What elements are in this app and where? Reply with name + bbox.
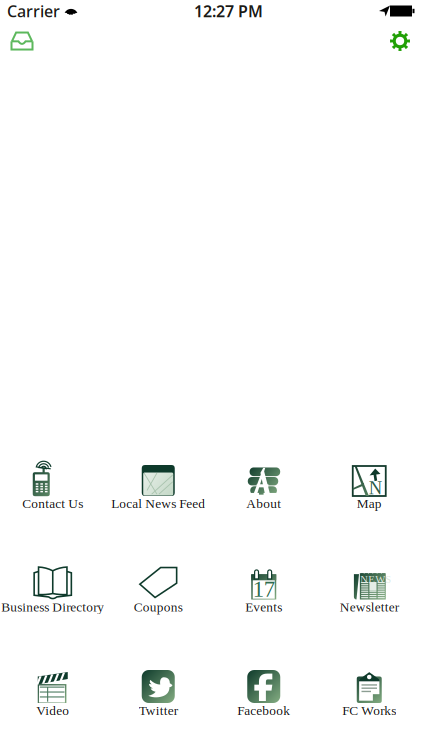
staticText: FC Works xyxy=(342,703,396,718)
staticText: Contact Us xyxy=(22,496,83,511)
staticText: Business Directory xyxy=(1,599,104,614)
staticText: 17 xyxy=(253,576,275,601)
staticText: Carrier xyxy=(7,0,60,22)
staticText: Facebook xyxy=(237,703,290,718)
button[interactable]: Business Directory xyxy=(0,565,105,615)
button[interactable]: N xyxy=(316,462,422,512)
button[interactable]: About xyxy=(211,462,316,512)
button[interactable]: Facebook xyxy=(211,669,316,719)
button[interactable]: Inbox xyxy=(0,23,44,59)
staticText: Events xyxy=(245,599,282,614)
button[interactable]: Video xyxy=(0,669,105,719)
button[interactable]: Twitter xyxy=(105,669,211,719)
staticText: Newsletter xyxy=(340,599,399,614)
staticText: NEWS xyxy=(360,573,391,585)
staticText: Local News Feed xyxy=(111,496,205,511)
button[interactable]: FC Works xyxy=(316,669,422,719)
button[interactable]: Contact Us xyxy=(0,462,105,512)
button[interactable]: NEWS xyxy=(316,565,422,615)
staticText: About xyxy=(246,496,281,511)
button[interactable]: Settings xyxy=(378,23,422,59)
staticText: Twitter xyxy=(139,703,178,718)
staticText: Video xyxy=(36,703,69,718)
button[interactable]: 17 xyxy=(211,565,316,615)
staticText: 12:27 PM xyxy=(194,0,263,22)
staticText: Map xyxy=(357,496,382,511)
staticText: N xyxy=(369,478,382,498)
button[interactable]: Local News Feed xyxy=(105,462,211,512)
staticText: Coupons xyxy=(134,599,183,614)
button[interactable]: Coupons xyxy=(105,565,211,615)
